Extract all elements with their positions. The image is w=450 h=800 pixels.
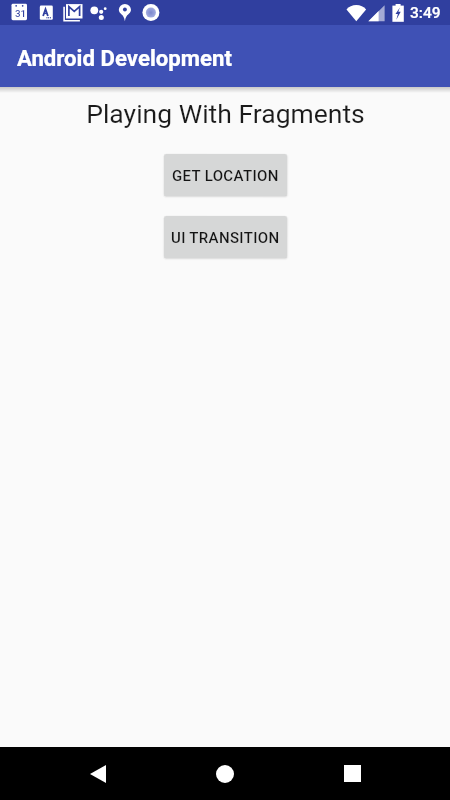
button[interactable]: Recent apps <box>310 747 394 800</box>
staticText: Playing With Fragments <box>86 98 365 129</box>
staticText: 3:49 <box>410 4 441 22</box>
staticText: GET LOCATION <box>172 167 279 185</box>
staticText: UI TRANSITION <box>171 229 280 247</box>
staticText: Android Development <box>17 45 232 71</box>
button[interactable]: Back <box>56 747 140 800</box>
button[interactable]: GET LOCATION <box>164 154 287 196</box>
button[interactable]: Home <box>183 747 267 800</box>
button[interactable]: UI TRANSITION <box>164 216 287 258</box>
staticText: 31 <box>15 8 27 19</box>
